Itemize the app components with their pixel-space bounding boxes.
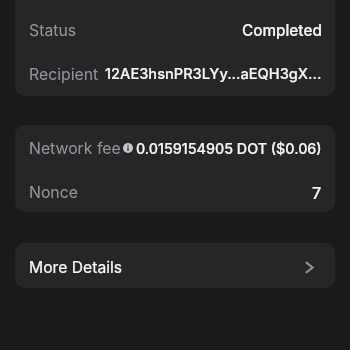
staticText: Completed (242, 21, 322, 40)
button[interactable]: Status (15, 8, 335, 52)
other: Open more details (305, 262, 314, 273)
staticText: Status (29, 21, 77, 40)
staticText: More Details (29, 258, 123, 277)
staticText: 0.0159154905 DOT ($0.06) (136, 140, 322, 157)
staticText: 7 (312, 183, 322, 202)
button[interactable]: Recipient (15, 52, 335, 96)
staticText: Recipient (29, 65, 99, 84)
other: Network fee info (123, 143, 133, 153)
staticText: Network fee (29, 139, 121, 158)
button[interactable]: Network fee (15, 126, 335, 170)
staticText: Nonce (29, 183, 78, 202)
button[interactable]: Nonce (15, 170, 335, 212)
button[interactable]: More Details (15, 243, 335, 288)
staticText: 12AE3hsnPR3LYy...aEQH3gX... (105, 65, 322, 83)
